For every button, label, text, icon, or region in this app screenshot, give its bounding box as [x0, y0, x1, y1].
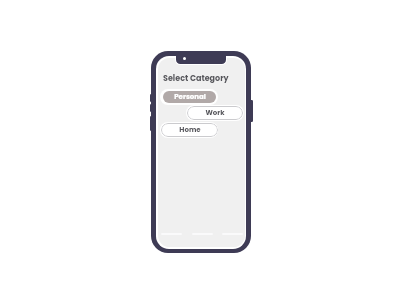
button[interactable]: Home	[160, 122, 218, 138]
staticText: Personal	[174, 92, 206, 102]
button[interactable]: Volume up	[150, 104, 153, 112]
button[interactable]: Personal	[160, 89, 218, 105]
button[interactable]: Volume down	[150, 116, 153, 131]
button[interactable]: Silent switch	[150, 94, 153, 102]
staticText: Home	[179, 125, 201, 135]
staticText: Work	[205, 108, 225, 118]
staticText: Select Category	[163, 73, 229, 84]
button[interactable]: Power	[250, 100, 253, 122]
button[interactable]: Work	[186, 105, 244, 121]
